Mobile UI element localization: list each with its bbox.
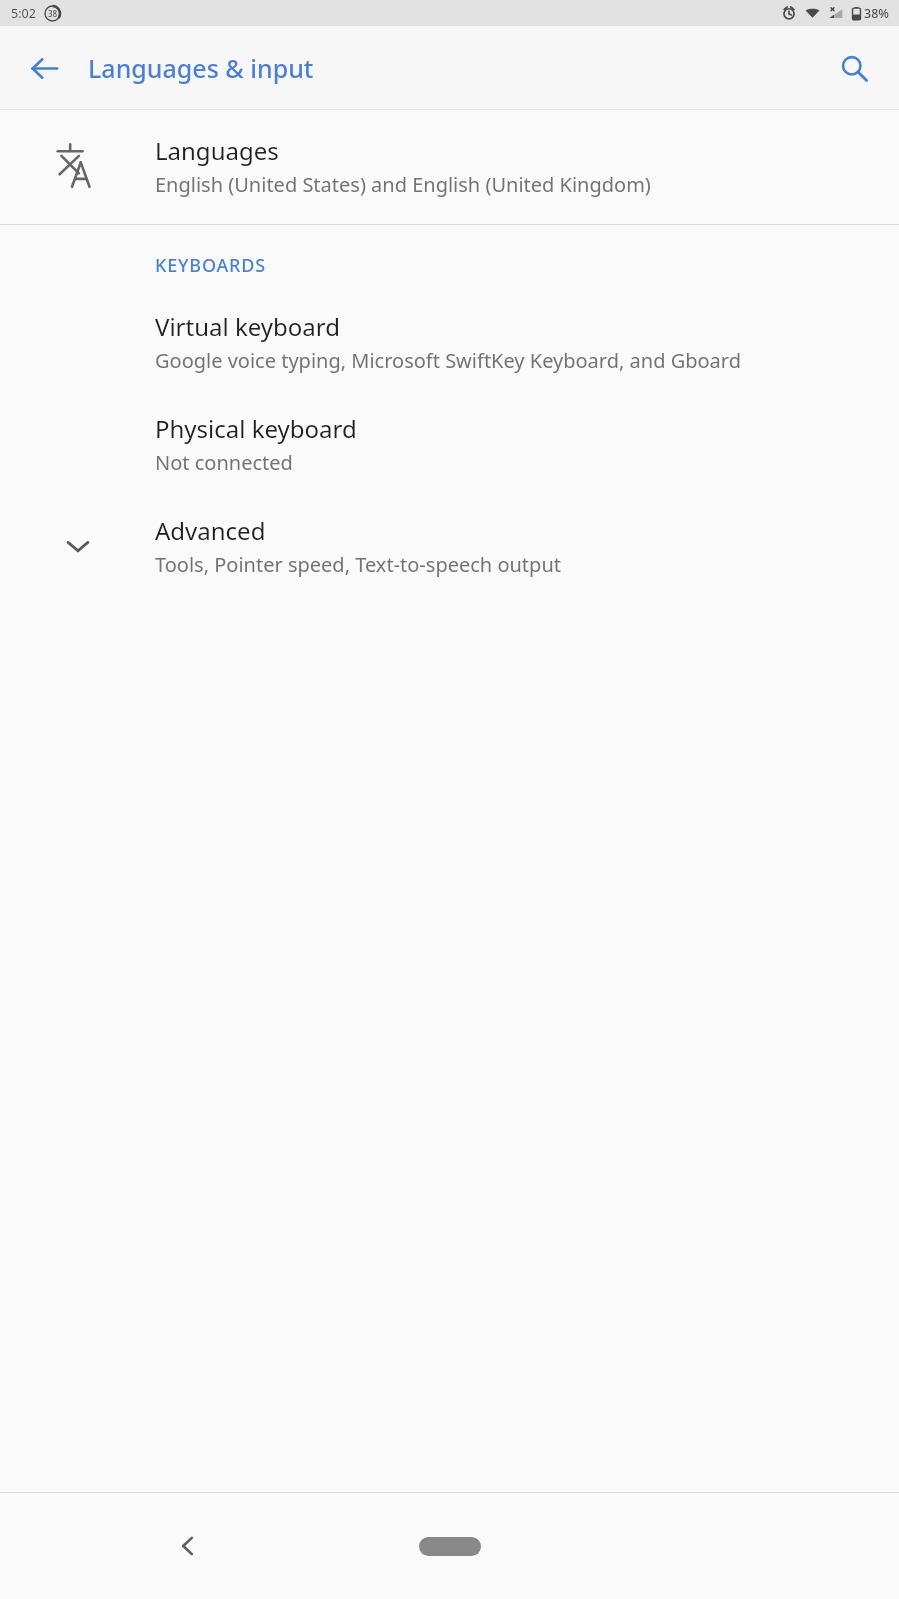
staticText: Virtual keyboard xyxy=(155,310,340,343)
button[interactable]: Virtual keyboard xyxy=(0,308,899,376)
button[interactable]: Physical keyboard xyxy=(0,410,899,478)
staticText: 38% xyxy=(864,5,889,22)
staticText: Advanced xyxy=(155,514,266,547)
button[interactable]: Advanced xyxy=(0,514,899,578)
staticText: Languages xyxy=(155,134,279,167)
staticText: 38 xyxy=(48,8,58,19)
staticText: Google voice typing, Microsoft SwiftKey … xyxy=(155,347,741,374)
button[interactable]: Search xyxy=(827,41,881,95)
button[interactable]: Back xyxy=(160,1518,216,1574)
staticText: 5:02 xyxy=(11,5,36,22)
button[interactable]: Home xyxy=(402,1522,498,1570)
staticText: KEYBOARDS xyxy=(155,253,266,278)
staticText: Languages & input xyxy=(88,51,314,85)
staticText: English (United States) and English (Uni… xyxy=(155,171,651,198)
button[interactable]: Navigate up xyxy=(16,40,72,96)
staticText: Physical keyboard xyxy=(155,412,357,445)
staticText: Tools, Pointer speed, Text-to-speech out… xyxy=(155,551,561,578)
staticText: Not connected xyxy=(155,449,293,476)
button[interactable]: Languages xyxy=(0,130,899,202)
